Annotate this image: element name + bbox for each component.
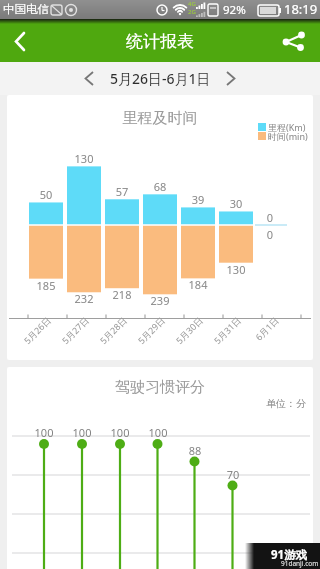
staticText: 里程(Km) — [268, 121, 306, 133]
staticText: 统计报表 — [126, 31, 194, 52]
staticText: 5月29日 — [135, 314, 167, 346]
staticText: 6月1日 — [252, 314, 281, 343]
staticText: 5月28日 — [97, 314, 129, 346]
staticText: 184 — [178, 277, 218, 292]
staticText: 0 — [250, 227, 290, 242]
staticText: 92% — [223, 2, 246, 18]
button[interactable] — [0, 19, 40, 62]
staticText: 2G — [188, 8, 196, 16]
staticText: 130 — [216, 262, 256, 277]
staticText: 驾驶习惯评分 — [0, 378, 320, 397]
staticText: 68 — [140, 179, 180, 194]
staticText: 5月31日 — [211, 314, 243, 346]
staticText: 单位：分 — [0, 397, 306, 410]
staticText: 5月27日 — [59, 314, 91, 346]
staticText: 88 — [175, 443, 215, 458]
staticText: 232 — [64, 291, 104, 306]
staticText: 100 — [24, 425, 64, 440]
staticText: 0 — [250, 210, 290, 225]
staticText: 70 — [213, 467, 253, 482]
staticText: 4G — [188, 0, 196, 8]
staticText: 239 — [140, 293, 180, 308]
staticText: 91游戏 — [271, 547, 308, 563]
staticText: 218 — [102, 287, 142, 302]
staticText: 39 — [178, 192, 218, 207]
button[interactable]: 5月26日-6月1日 — [0, 62, 320, 95]
staticText: 100 — [100, 425, 140, 440]
staticText: 185 — [26, 278, 66, 293]
staticText: 130 — [64, 151, 104, 166]
staticText: 50 — [26, 187, 66, 202]
staticText: 5月26日 — [21, 314, 53, 346]
staticText: 里程及时间 — [0, 109, 320, 128]
staticText: 30 — [216, 196, 256, 211]
staticText: 5月26日-6月1日 — [110, 69, 211, 88]
staticText: 中国电信 — [3, 2, 49, 16]
staticText: 100 — [62, 425, 102, 440]
staticText: 91danji.com — [281, 559, 319, 568]
staticText: 时间(min) — [268, 130, 308, 142]
staticText: 100 — [138, 425, 178, 440]
staticText: 57 — [102, 184, 142, 199]
staticText: 5月30日 — [173, 314, 205, 346]
button[interactable] — [280, 19, 320, 62]
staticText: 18:19 — [284, 0, 318, 18]
